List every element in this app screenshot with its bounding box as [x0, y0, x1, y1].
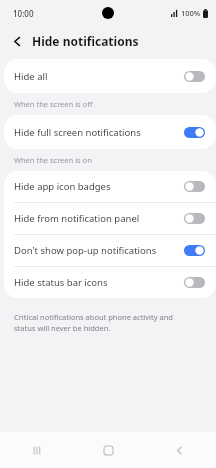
button[interactable]: Hide all — [4, 59, 216, 93]
button[interactable]: Back — [164, 435, 194, 465]
staticText: Hide notifications — [32, 33, 139, 49]
button[interactable]: Hide from notification panel — [4, 203, 216, 234]
staticText: Critical notifications about phone activ… — [14, 312, 196, 333]
button[interactable]: Home — [93, 435, 123, 465]
staticText: 100% — [181, 8, 201, 18]
staticText: When the screen is off — [14, 99, 93, 109]
staticText: Hide full screen notifications — [14, 126, 141, 139]
button[interactable]: Hide full screen notifications — [4, 115, 216, 149]
staticText: Hide from notification panel — [14, 212, 140, 225]
button[interactable]: Hide status bar icons — [4, 267, 216, 298]
button[interactable]: Recents — [22, 435, 52, 465]
staticText: Hide status bar icons — [14, 276, 108, 289]
button[interactable]: Hide app icon badges — [4, 171, 216, 202]
button[interactable]: Back — [5, 29, 29, 53]
button[interactable]: Don't show pop-up notifications — [4, 235, 216, 266]
staticText: When the screen is on — [14, 155, 92, 165]
staticText: Hide app icon badges — [14, 180, 111, 193]
staticText: Don't show pop-up notifications — [14, 244, 157, 257]
staticText: 10:00 — [13, 8, 34, 19]
staticText: Hide all — [14, 70, 48, 83]
